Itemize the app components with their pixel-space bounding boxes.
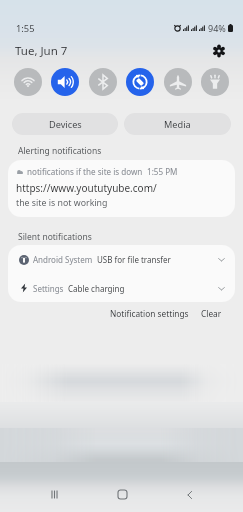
button[interactable]: Media (124, 113, 231, 135)
staticText: Media (164, 118, 191, 131)
button[interactable]: Back (168, 477, 212, 512)
button[interactable]: Notification settings (106, 305, 193, 322)
staticText: the site is not working (16, 197, 108, 209)
staticText: Devices (49, 118, 82, 131)
staticText: Cable charging (68, 283, 125, 294)
button[interactable]: Bluetooth (89, 68, 117, 96)
staticText: Clear (201, 308, 222, 319)
button[interactable]: Settings (209, 41, 229, 61)
staticText: Alerting notifications (18, 145, 102, 157)
staticText: 1:55 (16, 22, 35, 35)
staticText: Notification settings (110, 308, 189, 319)
staticText: Android System (33, 254, 93, 265)
button[interactable]: Airplane mode (164, 68, 192, 96)
staticText: Tue, Jun 7 (15, 43, 68, 59)
staticText: 94% (208, 22, 226, 34)
button[interactable]: Settings (8, 274, 235, 302)
staticText: Silent notifications (18, 231, 92, 243)
staticText: 1:55 PM (147, 166, 178, 177)
staticText: Settings (33, 283, 64, 294)
button[interactable]: Wi-Fi (14, 68, 42, 96)
button[interactable]: Android System (8, 245, 235, 274)
button[interactable]: Clear (197, 305, 226, 322)
staticText: notifications if the site is down (27, 166, 143, 177)
button[interactable]: Home (100, 477, 144, 512)
button[interactable]: Recents (32, 477, 76, 512)
button[interactable]: Auto rotate (126, 68, 154, 96)
button[interactable]: Devices (12, 113, 118, 135)
staticText: https://www.yoututyube.com/ (16, 181, 157, 195)
staticText: USB for file transfer (97, 254, 171, 265)
button[interactable]: Sound (51, 68, 79, 96)
button[interactable]: Flashlight (201, 68, 229, 96)
